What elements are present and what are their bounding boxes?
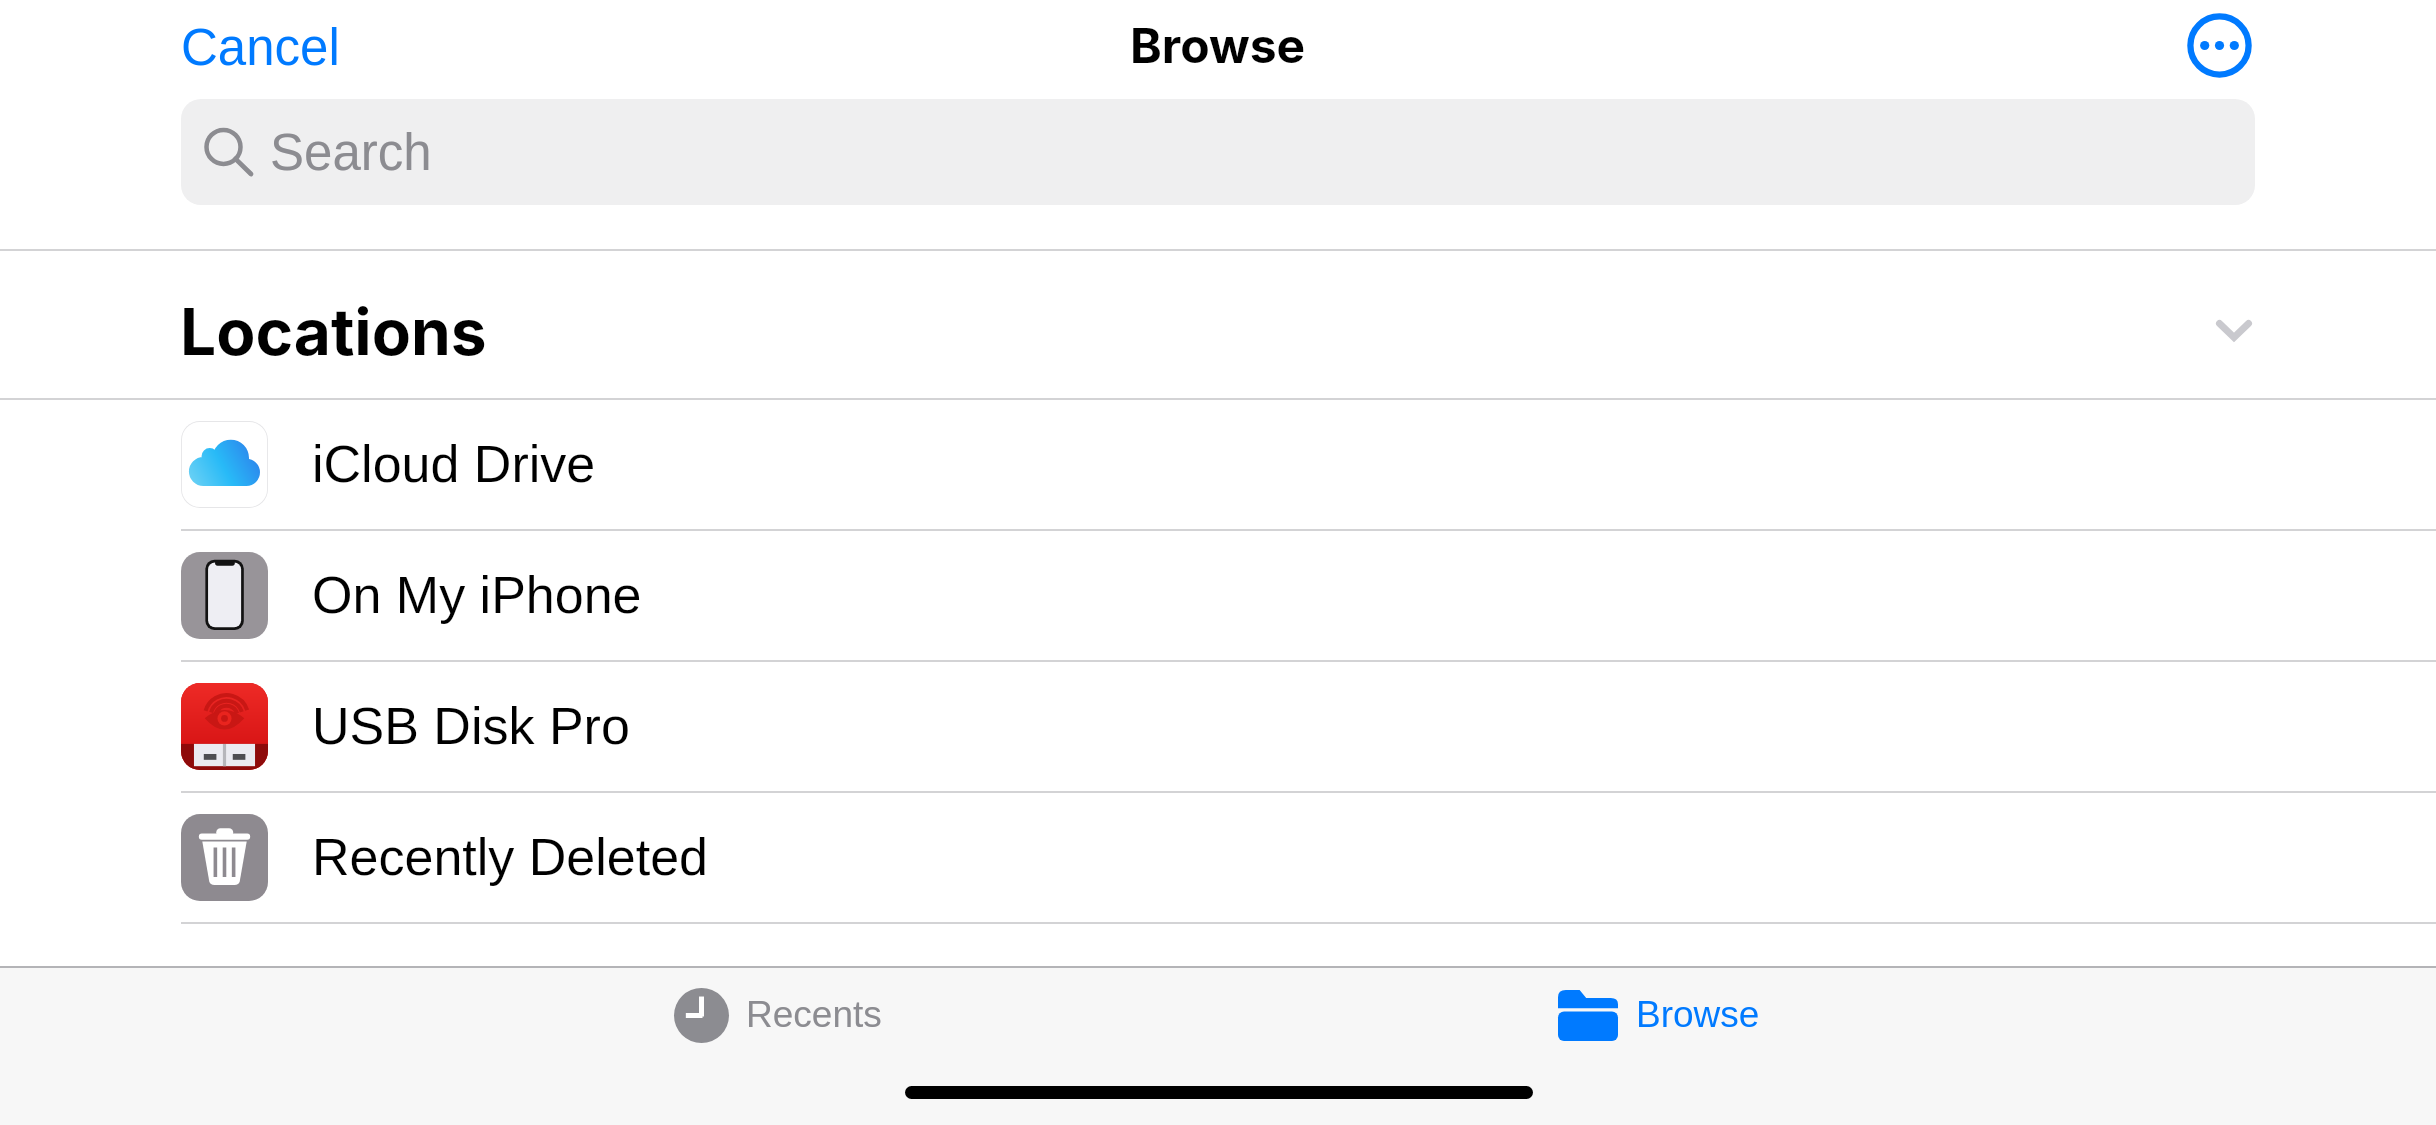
staticText: Search xyxy=(270,124,432,181)
staticText: Browse xyxy=(1130,16,1306,74)
button[interactable]: Browse xyxy=(1218,966,2099,1065)
button[interactable]: iCloud Drive xyxy=(0,400,2436,529)
staticText: Locations xyxy=(180,293,487,370)
button[interactable]: Search xyxy=(181,99,2255,205)
button[interactable]: USB Disk Pro xyxy=(0,662,2436,791)
button[interactable]: Cancel xyxy=(181,19,340,76)
button[interactable]: On My iPhone xyxy=(0,531,2436,660)
staticText: Recents xyxy=(746,994,882,1035)
button[interactable]: Recents xyxy=(337,966,1218,1065)
staticText: iCloud Drive xyxy=(312,435,596,493)
staticText: USB Disk Pro xyxy=(312,697,630,755)
button[interactable]: Recently Deleted xyxy=(0,793,2436,922)
staticText: Recently Deleted xyxy=(312,828,708,886)
staticText: Browse xyxy=(1636,994,1760,1035)
button[interactable]: More options xyxy=(2172,0,2268,93)
button[interactable]: Collapse Locations xyxy=(2186,282,2282,378)
staticText: On My iPhone xyxy=(312,566,642,624)
